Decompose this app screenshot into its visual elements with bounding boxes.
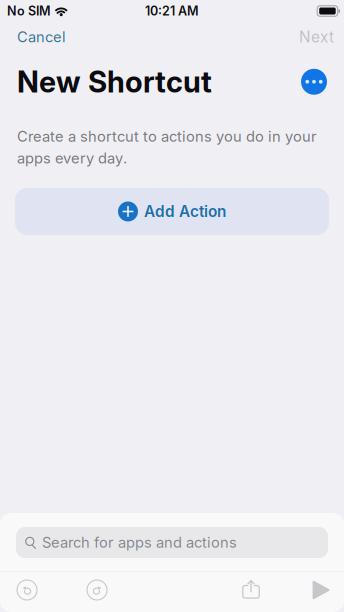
button[interactable]: Redo [70,574,124,606]
button[interactable]: Add Action [15,188,329,235]
staticText: Cancel [17,28,66,46]
button[interactable]: Cancel [0,22,83,52]
staticText: 10:21 AM [145,3,199,19]
button[interactable]: Undo [0,574,54,606]
button[interactable]: More options [301,69,327,95]
button[interactable]: Next [289,22,344,52]
staticText: No SIM [7,3,51,19]
staticText: apps every day. [17,149,127,167]
staticText: New Shortcut [17,64,212,99]
staticText: Create a shortcut to actions you do in y… [17,127,317,145]
staticText: Next [299,28,334,46]
button[interactable]: Run shortcut [294,574,344,606]
staticText: Add Action [144,202,226,221]
button[interactable]: Share [224,574,278,606]
staticText: Search for apps and actions [42,534,237,551]
button[interactable]: Search for apps and actions [16,527,328,558]
